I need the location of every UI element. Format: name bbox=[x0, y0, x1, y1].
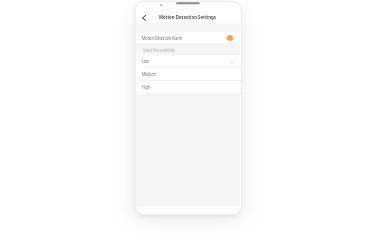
button[interactable]: Medium bbox=[136, 68, 240, 80]
button[interactable]: Motion Detection Alarm bbox=[136, 32, 240, 43]
staticText: Select the sensitivity bbox=[143, 47, 175, 53]
staticText: Motion Detection Alarm bbox=[142, 35, 182, 41]
button[interactable]: Back bbox=[137, 11, 150, 24]
button[interactable]: Low bbox=[136, 55, 240, 67]
staticText: Medium bbox=[142, 71, 156, 77]
button[interactable]: High bbox=[136, 81, 240, 93]
button[interactable]: Motion Detection Alarm toggle bbox=[225, 35, 233, 41]
staticText: Motion Detection Settings bbox=[159, 14, 216, 21]
staticText: High bbox=[142, 84, 150, 90]
staticText: Low bbox=[142, 58, 149, 64]
